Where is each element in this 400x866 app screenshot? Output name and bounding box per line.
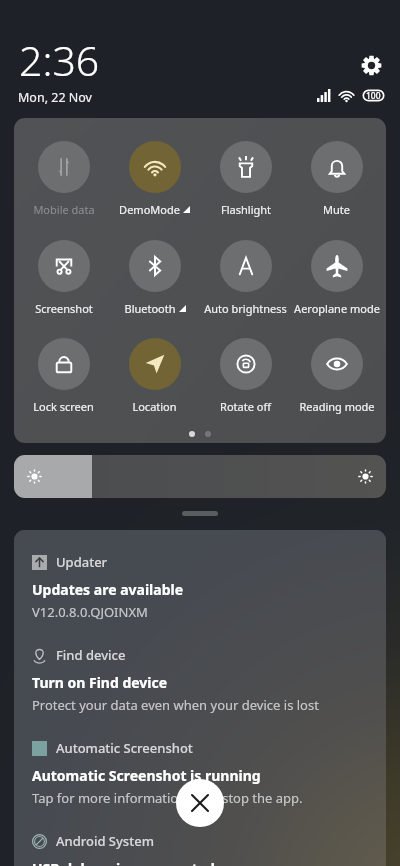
staticText: Screenshot bbox=[35, 301, 93, 316]
button[interactable]: Location bbox=[109, 338, 200, 414]
button[interactable]: Settings bbox=[355, 49, 387, 81]
button[interactable]: Aeroplane mode bbox=[291, 240, 382, 316]
button[interactable]: Automatic Screenshot bbox=[32, 739, 386, 807]
staticText: Rotate off bbox=[220, 399, 271, 414]
button[interactable]: Android System bbox=[32, 832, 386, 866]
staticText: Mute bbox=[323, 202, 350, 217]
staticText: Android System bbox=[56, 832, 154, 850]
button[interactable]: Auto brightness bbox=[200, 240, 291, 316]
button[interactable]: Screenshot bbox=[18, 240, 109, 316]
staticText: Aeroplane mode bbox=[294, 301, 380, 316]
button[interactable]: Updater bbox=[32, 553, 386, 621]
staticText: USB debugging connected bbox=[32, 859, 215, 866]
button[interactable]: DemoMode bbox=[109, 141, 200, 217]
button[interactable]: Reading mode bbox=[291, 338, 382, 414]
staticText: Protect your data even when your device … bbox=[32, 696, 319, 714]
staticText: 100 bbox=[366, 90, 381, 102]
staticText: DemoMode bbox=[119, 202, 180, 217]
staticText: Tap for more information or to stop the … bbox=[32, 789, 303, 807]
staticText: Reading mode bbox=[299, 399, 375, 414]
button[interactable]: Flashlight bbox=[200, 141, 291, 217]
staticText: 2:36 bbox=[19, 32, 100, 88]
button[interactable]: Mobile data bbox=[18, 141, 109, 217]
staticText: Mobile data bbox=[33, 202, 95, 217]
staticText: Location bbox=[132, 399, 177, 414]
staticText: Automatic Screenshot bbox=[56, 739, 193, 757]
staticText: Automatic Screenshot is running bbox=[32, 766, 261, 785]
button[interactable]: Brightness bbox=[14, 455, 386, 498]
button[interactable]: Mute bbox=[291, 141, 382, 217]
staticText: Bluetooth bbox=[124, 301, 176, 316]
staticText: Updates are available bbox=[32, 580, 184, 599]
button[interactable]: Lock screen bbox=[18, 338, 109, 414]
staticText: Lock screen bbox=[33, 399, 94, 414]
staticText: Flashlight bbox=[221, 202, 271, 217]
staticText: Turn on Find device bbox=[32, 673, 168, 692]
button[interactable]: Bluetooth bbox=[109, 240, 200, 316]
button[interactable]: Close bbox=[176, 779, 224, 827]
button[interactable]: Find device bbox=[32, 646, 386, 714]
staticText: V12.0.8.0.QJOINXM bbox=[32, 603, 148, 621]
button[interactable]: Rotate off bbox=[200, 338, 291, 414]
staticText: Mon, 22 Nov bbox=[18, 89, 92, 106]
staticText: Updater bbox=[56, 553, 108, 571]
staticText: Auto brightness bbox=[204, 301, 287, 316]
staticText: Find device bbox=[56, 646, 126, 664]
